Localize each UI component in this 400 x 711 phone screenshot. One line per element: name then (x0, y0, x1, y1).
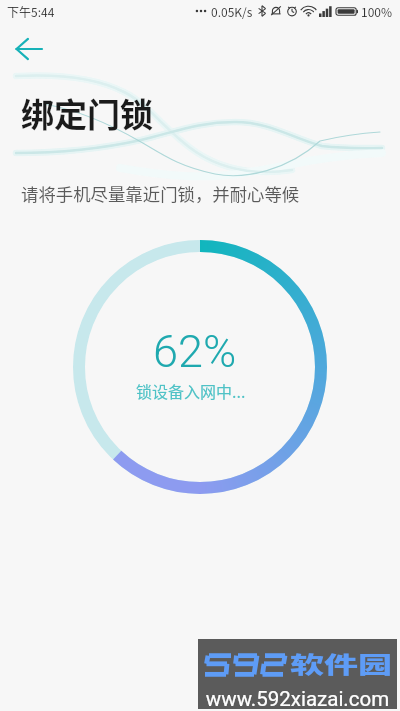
staticText: 0.05K/s (211, 3, 253, 20)
staticText: 下午5:44 (7, 3, 55, 20)
staticText: 请将手机尽量靠近门锁，并耐心等候 (21, 181, 300, 206)
button[interactable]: Back (6, 26, 52, 72)
staticText: www.592xiazai.com (198, 687, 397, 711)
staticText: 62% (153, 325, 237, 378)
staticText: 绑定门锁 (21, 89, 153, 137)
staticText: 软件园 (290, 647, 392, 680)
staticText: 锁设备入网中... (136, 379, 246, 402)
staticText: 100% (361, 3, 393, 20)
